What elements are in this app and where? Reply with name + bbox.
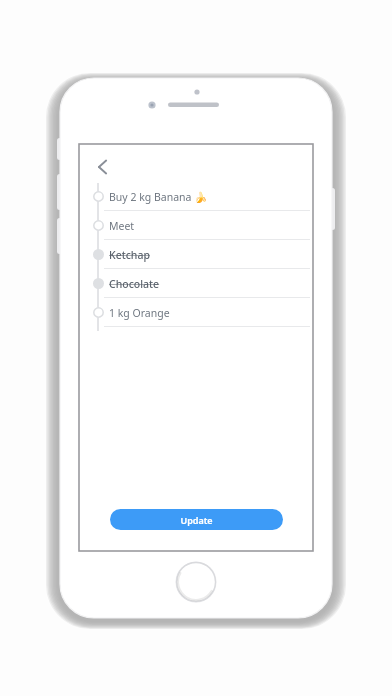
staticText: Meet (109, 219, 135, 233)
button[interactable]: Meet (79, 211, 313, 240)
button[interactable]: Ketchap (79, 240, 313, 269)
button[interactable]: Update (110, 509, 283, 530)
button[interactable]: Back (92, 155, 116, 179)
staticText: Ketchap (109, 248, 150, 262)
button[interactable]: Buy 2 kg Banana 🍌 (79, 182, 313, 211)
staticText: Buy 2 kg Banana 🍌 (109, 190, 208, 204)
staticText: Chocolate (109, 277, 160, 291)
staticText: 1 kg Orange (109, 306, 170, 320)
staticText: Update (180, 514, 213, 526)
button[interactable]: 1 kg Orange (79, 298, 313, 327)
button[interactable]: Chocolate (79, 269, 313, 298)
